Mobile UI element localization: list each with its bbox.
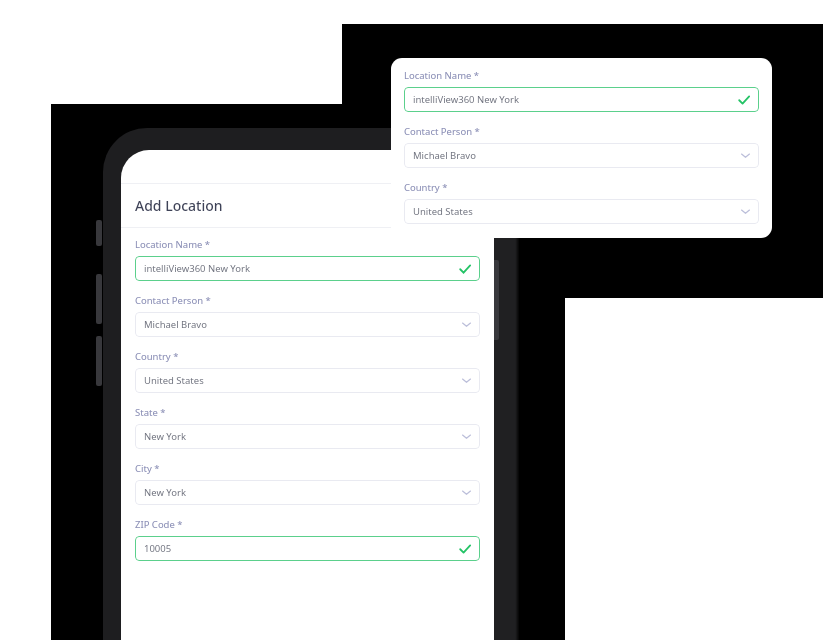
button[interactable]: New York	[135, 424, 480, 449]
staticText: Country *	[135, 350, 179, 363]
staticText: 10005	[144, 542, 459, 555]
other: Open dropdown	[462, 320, 471, 329]
button[interactable]: New York	[135, 480, 480, 505]
other: Open dropdown	[462, 488, 471, 497]
other: Open dropdown	[462, 376, 471, 385]
button[interactable]: Add Location	[121, 184, 494, 227]
staticText: Location Name *	[404, 69, 480, 82]
staticText: State *	[135, 406, 166, 419]
staticText: Country *	[404, 181, 448, 194]
other: Valid	[459, 543, 471, 555]
staticText: Location Name *	[135, 238, 211, 251]
button[interactable]: 10005	[135, 536, 480, 561]
button[interactable]: intelliView360 New York	[404, 87, 759, 112]
staticText: Contact Person *	[135, 294, 211, 307]
other: Open dropdown	[462, 432, 471, 441]
other: Open dropdown	[741, 151, 750, 160]
staticText: Contact Person *	[404, 125, 480, 138]
staticText: United States	[144, 374, 462, 387]
button[interactable]: Michael Bravo	[404, 143, 759, 168]
staticText: United States	[413, 205, 741, 218]
staticText: intelliView360 New York	[413, 93, 738, 106]
staticText: New York	[144, 486, 462, 499]
other: Open dropdown	[741, 207, 750, 216]
staticText: intelliView360 New York	[144, 262, 459, 275]
other: Valid	[738, 94, 750, 106]
button[interactable]: intelliView360 New York	[135, 256, 480, 281]
staticText: ZIP Code *	[135, 518, 183, 531]
staticText: Michael Bravo	[413, 149, 741, 162]
staticText: Michael Bravo	[144, 318, 462, 331]
button[interactable]: United States	[135, 368, 480, 393]
staticText: Add Location	[135, 196, 223, 215]
button[interactable]: United States	[404, 199, 759, 224]
staticText: City *	[135, 462, 160, 475]
button[interactable]: Michael Bravo	[135, 312, 480, 337]
other: Valid	[459, 263, 471, 275]
staticText: New York	[144, 430, 462, 443]
